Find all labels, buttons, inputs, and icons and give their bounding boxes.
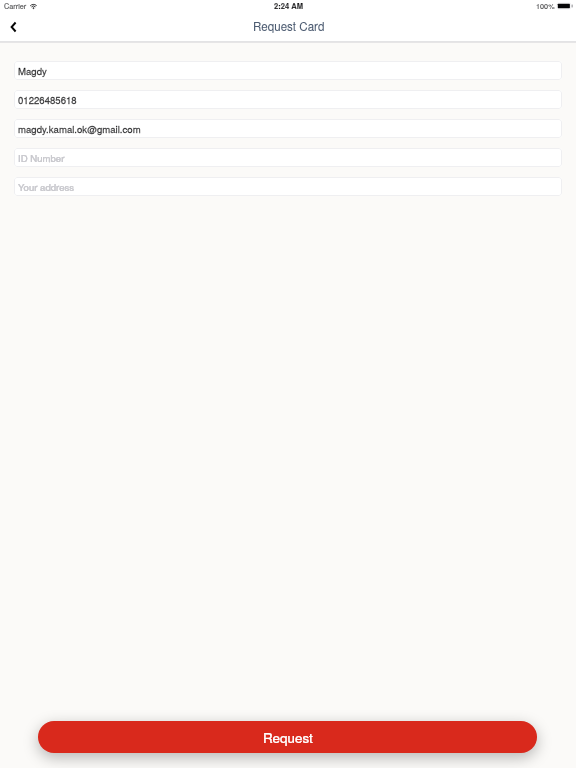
button[interactable]: Request (38, 721, 537, 753)
button[interactable]: 01226485618 (14, 90, 562, 109)
staticText: Carrier (4, 1, 27, 11)
staticText: ID Number (18, 151, 65, 165)
staticText: Magdy (18, 64, 47, 78)
staticText: Carrier (4, 1, 27, 11)
staticText: ID Number (18, 151, 65, 165)
staticText: Magdy (18, 64, 47, 78)
button[interactable]: Your address (14, 177, 562, 196)
staticText: Request Card (253, 18, 325, 35)
staticText: Request (263, 728, 313, 747)
staticText: Your address (18, 180, 75, 194)
button[interactable]: Magdy (14, 61, 562, 80)
staticText: Your address (18, 180, 75, 194)
staticText: 2:24 AM (274, 0, 304, 11)
staticText: 100% (536, 1, 555, 11)
staticText: Request (263, 728, 313, 747)
staticText: magdy.kamal.ok@gmail.com (18, 122, 141, 136)
staticText: Request Card (253, 18, 325, 35)
staticText: 01226485618 (18, 93, 77, 107)
staticText: 2:24 AM (274, 0, 304, 11)
staticText: 100% (536, 1, 555, 11)
button[interactable]: Back (0, 14, 27, 41)
staticText: magdy.kamal.ok@gmail.com (18, 122, 141, 136)
button[interactable]: ID Number (14, 148, 562, 167)
staticText: 01226485618 (18, 93, 77, 107)
button[interactable]: magdy.kamal.ok@gmail.com (14, 119, 562, 138)
